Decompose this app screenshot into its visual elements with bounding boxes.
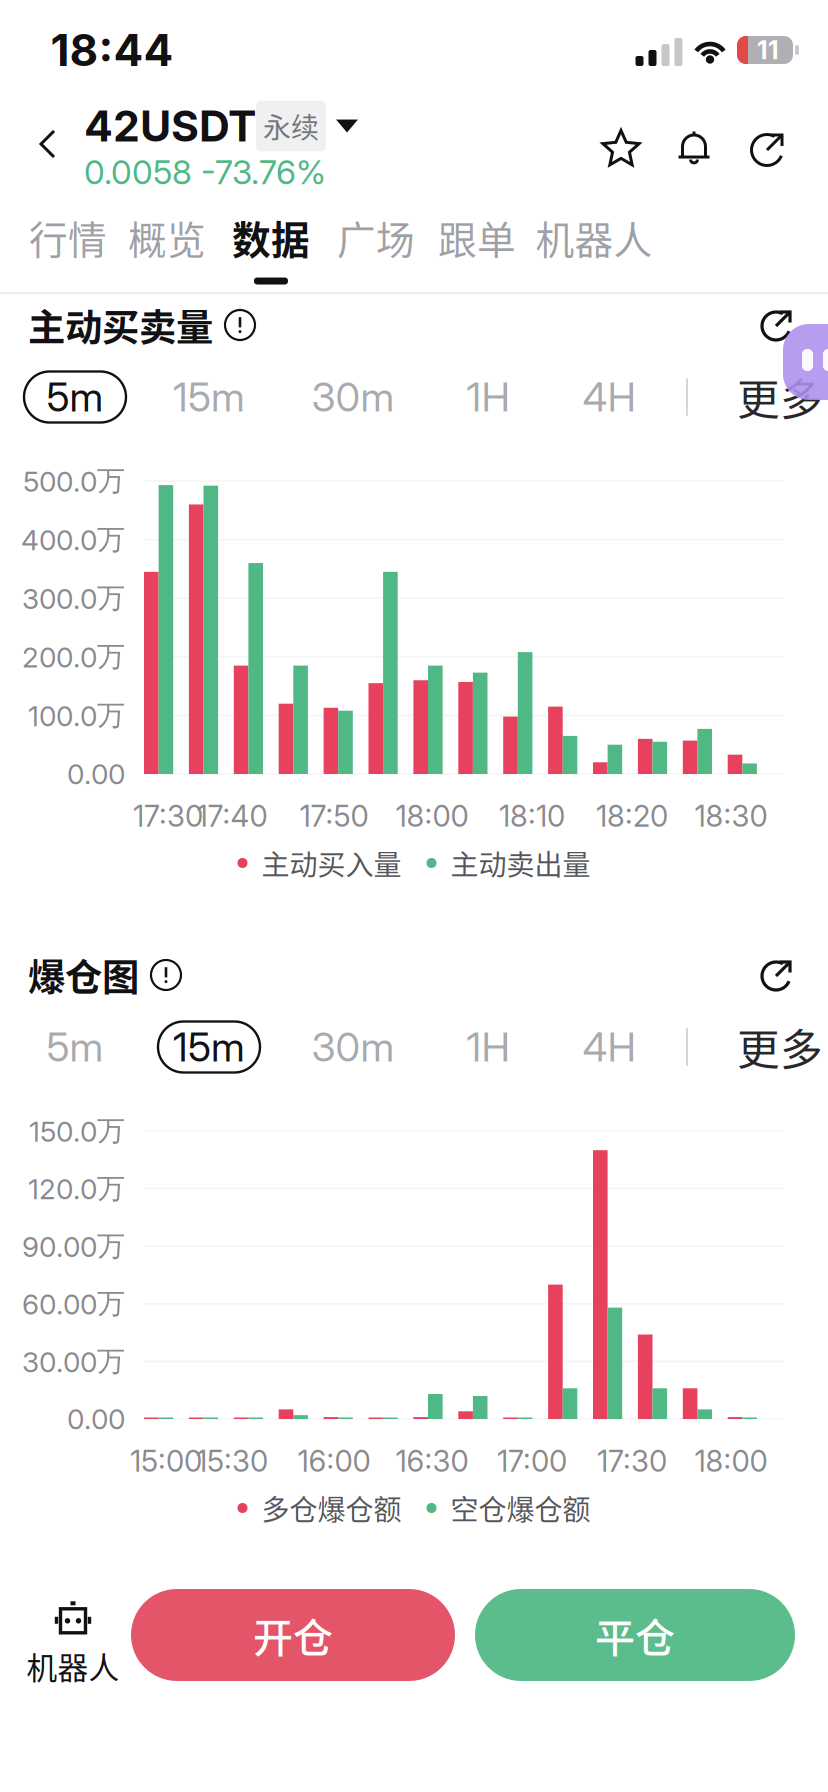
button[interactable]: 平仓 <box>475 1589 795 1681</box>
staticText: 16:00 <box>297 1443 370 1479</box>
staticText: 15m <box>173 1023 245 1071</box>
button[interactable]: 30m <box>298 368 408 426</box>
button[interactable]: 15m <box>154 1018 264 1076</box>
button[interactable]: 概览 <box>119 212 215 286</box>
staticText: 0.00 <box>67 1402 125 1436</box>
staticText: 1H <box>466 1023 509 1071</box>
staticText: 15:00 <box>130 1443 202 1479</box>
staticText: 5m <box>46 373 103 421</box>
staticText: 18:00 <box>694 1443 767 1479</box>
staticText: 200.0万 <box>22 639 125 674</box>
staticText: 5m <box>46 1023 103 1071</box>
button[interactable]: 5m <box>20 1018 130 1076</box>
button[interactable]: 开仓 <box>131 1589 455 1681</box>
staticText: 30m <box>311 1023 394 1071</box>
button[interactable]: 1H <box>433 1018 543 1076</box>
staticText: 机器人 <box>535 209 652 265</box>
button[interactable]: 跟单 <box>429 212 525 286</box>
button[interactable]: 数据 <box>223 212 319 286</box>
staticText: 数据 <box>232 209 310 265</box>
staticText: 30m <box>311 373 394 421</box>
staticText: 30.00万 <box>22 1344 125 1379</box>
staticText: 17:00 <box>497 1443 567 1479</box>
staticText: 300.0万 <box>22 581 125 616</box>
staticText: 爆仓图 <box>28 948 139 1002</box>
staticText: 17:40 <box>196 798 267 834</box>
button[interactable]: Contract type <box>256 100 358 152</box>
staticText: 120.0万 <box>28 1171 125 1206</box>
staticText: 60.00万 <box>22 1286 125 1321</box>
button[interactable]: Price alert <box>658 114 730 184</box>
staticText: 100.0万 <box>28 698 125 733</box>
staticText: 机器人 <box>26 1644 119 1688</box>
button[interactable]: Back <box>15 106 81 182</box>
staticText: 17:30 <box>133 798 203 834</box>
staticText: 16:30 <box>395 1443 468 1479</box>
staticText: 18:00 <box>395 798 468 834</box>
button[interactable]: Share <box>732 114 804 184</box>
button[interactable]: Assistant <box>783 324 828 400</box>
staticText: 永续 <box>263 106 319 146</box>
staticText: 18:30 <box>694 798 767 834</box>
staticText: 15m <box>173 373 245 421</box>
staticText: 空仓爆仓额 <box>450 1488 590 1528</box>
button[interactable]: 行情 <box>20 212 116 286</box>
staticText: 平仓 <box>595 1606 675 1664</box>
staticText: 跟单 <box>438 209 516 265</box>
staticText: 行情 <box>29 209 107 265</box>
button[interactable]: 更多 <box>725 368 828 426</box>
staticText: 400.0万 <box>21 522 125 557</box>
button[interactable]: Open full chart <box>748 296 806 354</box>
staticText: 18:44 <box>50 23 173 77</box>
staticText: 4H <box>582 373 635 421</box>
button[interactable]: 15m <box>154 368 264 426</box>
staticText: 主动买入量 <box>261 843 401 883</box>
staticText: 18:20 <box>596 798 668 834</box>
button[interactable]: 机器人 <box>520 212 668 286</box>
staticText: 42USDT <box>84 100 256 152</box>
button[interactable]: 5m <box>20 368 130 426</box>
staticText: 17:50 <box>299 798 368 834</box>
staticText: 更多 <box>737 1016 823 1078</box>
staticText: 主动卖出量 <box>450 843 590 883</box>
staticText: 0.00 <box>67 757 125 791</box>
button[interactable]: 30m <box>298 1018 408 1076</box>
button[interactable]: Open full chart <box>748 946 806 1004</box>
staticText: 4H <box>582 1023 635 1071</box>
staticText: 500.0万 <box>23 463 125 499</box>
staticText: 开仓 <box>253 1606 333 1664</box>
staticText: 概览 <box>128 209 206 265</box>
button[interactable]: 4H <box>554 1018 664 1076</box>
staticText: 150.0万 <box>29 1113 125 1149</box>
staticText: 主动买卖量 <box>28 298 213 352</box>
staticText: 90.00万 <box>22 1229 125 1264</box>
staticText: 0.0058 -73.76% <box>84 152 326 192</box>
button[interactable]: 4H <box>554 368 664 426</box>
staticText: 15:30 <box>196 1443 268 1479</box>
staticText: 17:30 <box>597 1443 667 1479</box>
button[interactable]: 1H <box>433 368 543 426</box>
staticText: 多仓爆仓额 <box>261 1488 401 1528</box>
button[interactable]: 机器人 <box>18 1593 128 1695</box>
staticText: 1H <box>466 373 509 421</box>
staticText: 广场 <box>337 209 415 265</box>
staticText: 18:10 <box>499 798 565 834</box>
staticText: 11 <box>757 35 779 65</box>
button[interactable]: 更多 <box>725 1018 828 1076</box>
button[interactable]: Favorite <box>585 114 657 184</box>
staticText: 更多 <box>737 366 823 428</box>
button[interactable]: 广场 <box>328 212 424 286</box>
